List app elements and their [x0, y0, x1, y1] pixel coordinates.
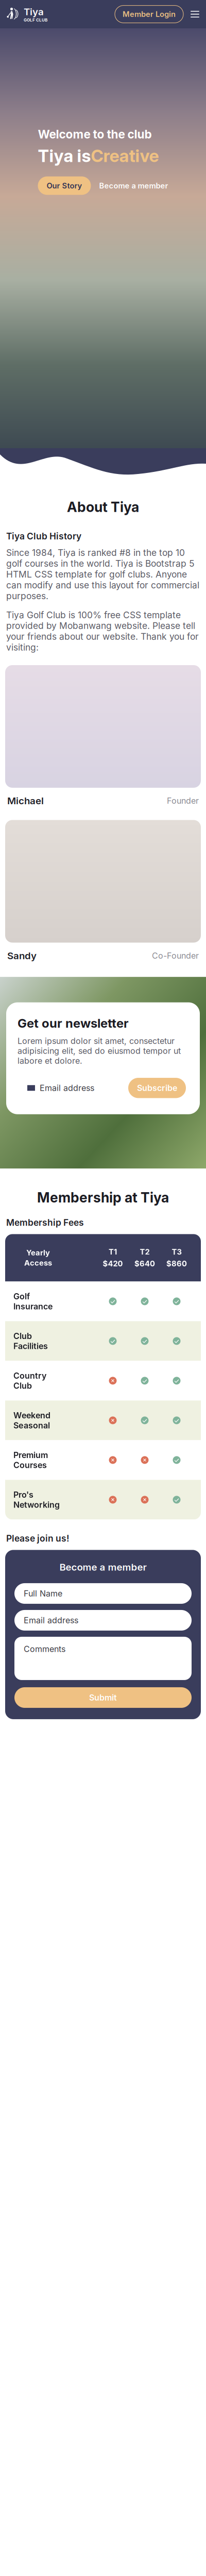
staticText: T3	[172, 1247, 182, 1256]
button[interactable]: Tiya Golf Club home	[7, 6, 47, 23]
staticText: Become a member	[59, 1561, 147, 1573]
button[interactable]: Menu	[183, 6, 199, 23]
staticText: Subscribe	[137, 1083, 177, 1093]
staticText: Club Facilities	[13, 1331, 48, 1351]
staticText: T1	[109, 1247, 117, 1256]
staticText: Michael	[7, 795, 44, 807]
staticText: Welcome to the club	[38, 127, 152, 141]
staticText: $420	[103, 1259, 123, 1268]
button[interactable]: Email address	[14, 1610, 192, 1631]
staticText: Tiya Golf Club is 100% free CSS template…	[6, 610, 199, 653]
button[interactable]: Our Story	[38, 176, 91, 195]
staticText: $860	[166, 1259, 187, 1268]
staticText: Please join us!	[6, 1533, 70, 1544]
staticText: Since 1984, Tiya is ranked #8 in the top…	[6, 547, 199, 601]
staticText: GOLF CLUB	[24, 18, 47, 23]
staticText: Golf Insurance	[13, 1291, 53, 1311]
staticText: Get our newsletter	[18, 1016, 129, 1031]
staticText: Creative	[91, 145, 159, 166]
staticText: Tiya is	[38, 145, 91, 166]
staticText: Member Login	[123, 10, 176, 19]
staticText: $640	[134, 1259, 155, 1268]
staticText: Sandy	[7, 950, 37, 961]
staticText: Yearly	[26, 1248, 50, 1257]
button[interactable]: Full Name	[14, 1583, 192, 1604]
staticText: Comments	[24, 1644, 65, 1654]
button[interactable]: Member Login	[115, 5, 183, 23]
staticText: Tiya Club History	[6, 531, 81, 542]
button[interactable]: Submit	[14, 1687, 192, 1708]
staticText: About Tiya	[67, 499, 139, 515]
staticText: Co-Founder	[152, 951, 199, 961]
staticText: T2	[140, 1247, 150, 1256]
staticText: Founder	[167, 796, 199, 806]
staticText: Pro's Networking	[13, 1490, 60, 1510]
staticText: Lorem ipsum dolor sit amet, consectetur …	[18, 1036, 181, 1066]
button[interactable]: Become a member	[99, 176, 168, 195]
staticText: Full Name	[24, 1589, 62, 1599]
staticText: Become a member	[99, 181, 168, 190]
staticText: Membership at Tiya	[37, 1189, 169, 1206]
staticText: Country Club	[13, 1371, 46, 1391]
button[interactable]: Subscribe	[128, 1078, 186, 1098]
button[interactable]: Comments	[14, 1637, 192, 1680]
staticText: Our Story	[47, 181, 82, 190]
staticText: Access	[24, 1258, 52, 1267]
staticText: Premium Courses	[13, 1450, 48, 1470]
staticText: Email address	[40, 1083, 94, 1093]
staticText: Weekend Seasonal	[13, 1410, 50, 1430]
staticText: Membership Fees	[6, 1217, 84, 1228]
staticText: Tiya	[24, 6, 44, 18]
staticText: Submit	[89, 1693, 117, 1703]
staticText: Email address	[24, 1615, 78, 1625]
